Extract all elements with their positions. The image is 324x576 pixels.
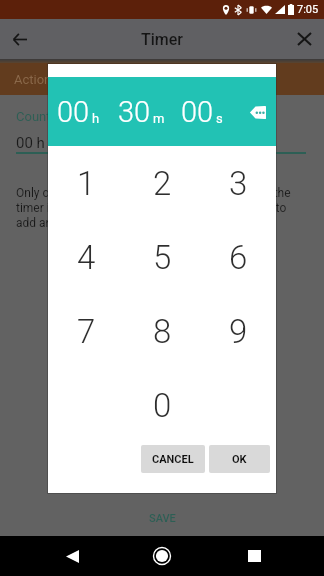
staticText: Countdown: [16, 109, 83, 124]
button[interactable]: Back: [54, 538, 90, 574]
staticText: 9: [229, 312, 248, 351]
button[interactable]: 9: [200, 294, 276, 368]
staticText: Timer: [0, 30, 324, 49]
staticText: 4: [77, 238, 96, 277]
button[interactable]: 2: [124, 146, 200, 220]
staticText: 2: [153, 164, 172, 203]
staticText: 6: [229, 238, 248, 277]
staticText: 7:05: [297, 3, 319, 16]
button[interactable]: OK: [209, 445, 270, 473]
staticText: Action:: [14, 72, 55, 87]
staticText: 7: [77, 312, 96, 351]
button[interactable]: Close: [284, 19, 324, 59]
staticText: 00: [181, 95, 214, 129]
button[interactable]: Backspace: [247, 102, 267, 122]
staticText: Only one timer can be active at a given …: [16, 186, 291, 230]
staticText: 8: [153, 312, 172, 351]
staticText: h: [92, 111, 100, 126]
button[interactable]: 3: [200, 146, 276, 220]
button[interactable]: 4: [48, 220, 124, 294]
button[interactable]: Recents: [236, 538, 272, 574]
button[interactable]: Back: [0, 19, 40, 59]
staticText: 1: [77, 164, 96, 203]
button[interactable]: 8: [124, 294, 200, 368]
button[interactable]: CANCEL: [141, 445, 205, 473]
staticText: 30: [118, 95, 151, 129]
staticText: 00 h : 30 m : 00 s: [16, 134, 130, 152]
staticText: s: [216, 111, 223, 126]
button[interactable]: Home: [144, 538, 180, 574]
staticText: 0: [153, 386, 172, 425]
staticText: OK: [232, 453, 247, 466]
staticText: 00: [57, 95, 90, 129]
button[interactable]: 7: [48, 294, 124, 368]
button[interactable]: 5: [124, 220, 200, 294]
staticText: 3: [229, 164, 248, 203]
button[interactable]: SAVE: [0, 500, 324, 536]
button[interactable]: 0: [124, 368, 200, 442]
staticText: CANCEL: [152, 453, 194, 466]
staticText: 5: [153, 238, 172, 277]
staticText: SAVE: [149, 512, 176, 525]
button[interactable]: 1: [48, 146, 124, 220]
button[interactable]: 6: [200, 220, 276, 294]
staticText: m: [153, 111, 165, 126]
